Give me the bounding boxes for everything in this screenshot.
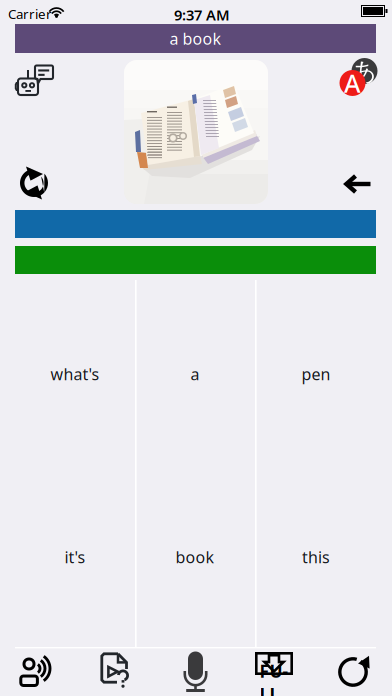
staticText: Carrier xyxy=(8,5,52,23)
button[interactable]: Translate xyxy=(340,58,378,96)
button[interactable]: Listen xyxy=(19,654,53,687)
staticText: a book xyxy=(169,28,221,49)
button[interactable]: Chat bot xyxy=(14,60,54,98)
button[interactable]: a xyxy=(135,357,255,391)
button[interactable]: it's xyxy=(15,540,135,574)
button[interactable]: Record xyxy=(183,650,208,693)
staticText: what's xyxy=(50,363,99,385)
button[interactable]: Shuffle xyxy=(19,166,49,200)
button[interactable]: Quiz xyxy=(100,652,131,689)
staticText: pen xyxy=(301,363,330,385)
staticText: A xyxy=(344,66,361,100)
staticText: this xyxy=(302,546,330,568)
button[interactable]: what's xyxy=(15,357,135,391)
button[interactable]: pen xyxy=(256,357,376,391)
button[interactable]: book xyxy=(135,540,255,574)
staticText: a xyxy=(190,363,199,385)
staticText: あ xyxy=(352,57,377,86)
button[interactable]: Previous xyxy=(343,173,373,195)
staticText: FULL xyxy=(259,659,288,696)
staticText: book xyxy=(175,546,214,568)
button[interactable]: Refresh xyxy=(338,655,371,687)
button[interactable]: this xyxy=(256,540,376,574)
button[interactable]: Download full xyxy=(255,652,293,690)
staticText: it's xyxy=(64,546,85,568)
staticText: 9:37 AM xyxy=(174,5,230,24)
